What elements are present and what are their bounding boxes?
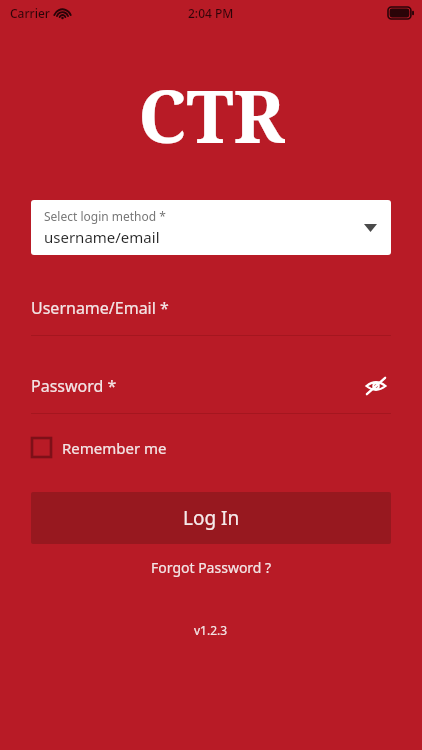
button[interactable]: Password *	[31, 375, 361, 397]
staticText: Carrier	[10, 5, 50, 21]
staticText: 2:04 PM	[188, 5, 234, 21]
staticText: Log In	[183, 505, 240, 531]
staticText: Forgot Password ?	[151, 558, 272, 577]
staticText: Remember me	[62, 438, 167, 458]
staticText: Select login method *	[44, 208, 166, 224]
staticText: v1.2.3	[194, 622, 228, 638]
button[interactable]: Username/Email *	[31, 297, 391, 336]
button[interactable]: Select login method *	[31, 200, 391, 255]
staticText: Username/Email *	[31, 297, 169, 319]
button[interactable]: Forgot Password ?	[139, 552, 284, 583]
button[interactable]: Remember me	[31, 437, 167, 458]
button[interactable]: Log In	[31, 492, 391, 544]
staticText: username/email	[44, 227, 160, 247]
staticText: Password *	[31, 375, 117, 397]
staticText: CTR	[138, 66, 285, 164]
button[interactable]: Show password	[361, 371, 391, 401]
